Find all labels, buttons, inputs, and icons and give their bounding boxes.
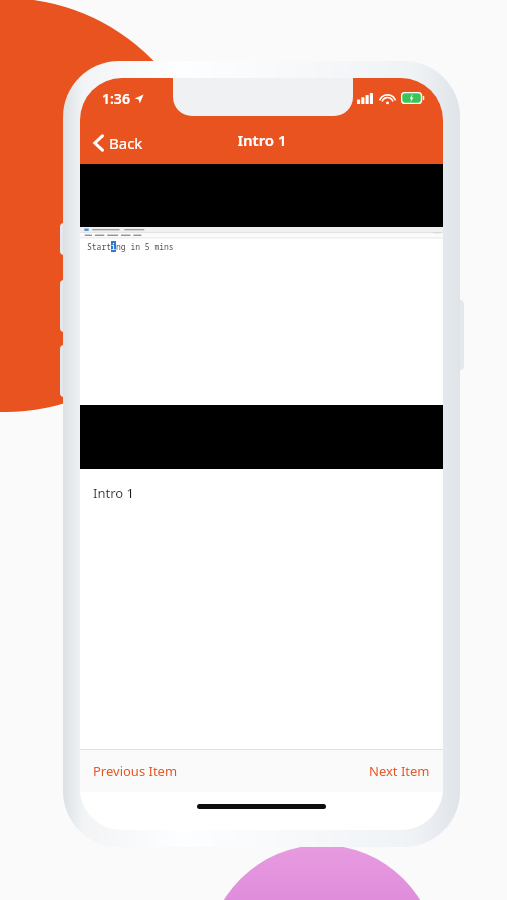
- staticText: Back: [109, 133, 143, 153]
- staticText: ng in 5 mins: [116, 241, 174, 252]
- button[interactable]: Intro 1: [80, 469, 443, 517]
- button[interactable]: Next Item: [356, 750, 443, 792]
- staticText: Intro 1: [93, 484, 134, 502]
- button[interactable]: Previous Item: [80, 750, 191, 792]
- other: Back: [93, 134, 104, 152]
- staticText: Start: [87, 241, 111, 252]
- button[interactable]: Back: [89, 130, 147, 156]
- staticText: i: [111, 241, 116, 252]
- staticText: Intro 1: [237, 130, 287, 150]
- staticText: Previous Item: [93, 762, 178, 780]
- staticText: 1:36: [102, 89, 130, 108]
- staticText: Next Item: [369, 762, 430, 780]
